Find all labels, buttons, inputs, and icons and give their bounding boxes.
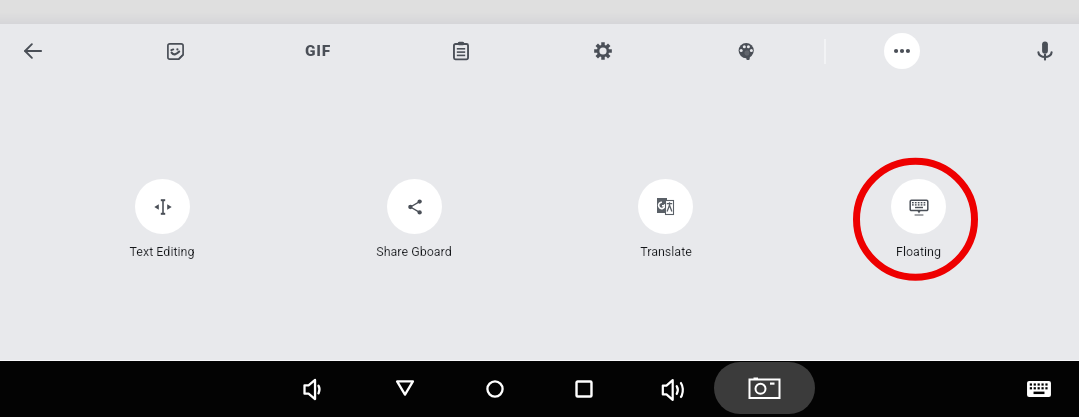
button[interactable]: GIF bbox=[294, 35, 342, 67]
button[interactable]: Volume down bbox=[292, 367, 336, 411]
button[interactable]: Recents bbox=[562, 367, 606, 411]
button[interactable]: Settings bbox=[579, 27, 627, 75]
button[interactable]: Back bbox=[383, 366, 427, 410]
button[interactable]: Stickers bbox=[151, 27, 199, 75]
button[interactable]: Floating bbox=[858, 179, 978, 259]
button[interactable]: Back bbox=[9, 27, 57, 75]
staticText: Share Gboard bbox=[376, 244, 452, 259]
button[interactable]: Text Editing bbox=[102, 179, 222, 259]
button[interactable]: Share Gboard bbox=[354, 179, 474, 259]
button[interactable]: Clipboard bbox=[437, 27, 485, 75]
button[interactable]: Translate bbox=[605, 179, 725, 259]
button[interactable]: Voice input bbox=[1021, 27, 1069, 75]
staticText: Floating bbox=[896, 244, 941, 259]
staticText: Text Editing bbox=[129, 244, 195, 259]
button[interactable]: Themes bbox=[722, 27, 770, 75]
button[interactable]: Show keyboard bbox=[1017, 367, 1061, 411]
button[interactable]: Volume up bbox=[652, 368, 696, 412]
button[interactable]: Home bbox=[473, 367, 517, 411]
button[interactable]: More options bbox=[884, 33, 920, 69]
staticText: Translate bbox=[640, 244, 692, 259]
staticText: GIF bbox=[305, 42, 331, 60]
button[interactable]: Screenshot bbox=[714, 362, 815, 414]
